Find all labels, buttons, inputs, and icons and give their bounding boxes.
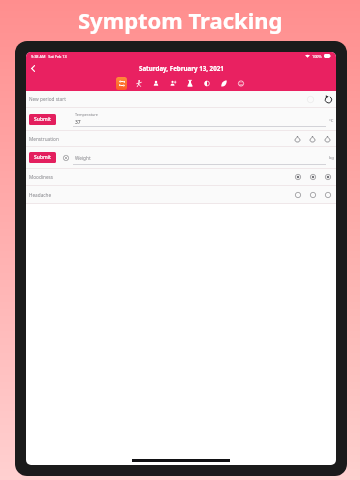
- staticText: Symptom Tracking: [78, 5, 283, 35]
- staticText: New period start: [29, 96, 66, 102]
- button[interactable]: Submit: [29, 152, 56, 163]
- button[interactable]: Submit: [29, 114, 56, 125]
- staticText: Submit: [34, 116, 51, 123]
- staticText: Moodiness: [29, 174, 54, 180]
- button[interactable]: Reset: [321, 92, 335, 106]
- staticText: kg: [329, 155, 334, 161]
- button[interactable]: Headache: [26, 186, 336, 203]
- button[interactable]: Mood level 3: [320, 169, 335, 185]
- button[interactable]: Mood level 1: [290, 169, 305, 185]
- staticText: Saturday, February 13, 2021: [139, 64, 224, 72]
- button[interactable]: Flow level 2: [305, 131, 320, 146]
- staticText: Temperature: [75, 112, 98, 117]
- button[interactable]: Add person: [167, 77, 178, 90]
- button[interactable]: Submit: [26, 108, 336, 130]
- staticText: 100%: [312, 54, 322, 59]
- button[interactable]: Headache level 3: [320, 187, 335, 203]
- button[interactable]: Activity: [133, 77, 144, 90]
- button[interactable]: Flow level 3: [320, 131, 335, 146]
- button[interactable]: Cycle: [116, 77, 127, 90]
- button[interactable]: Back: [27, 62, 39, 74]
- button[interactable]: Mood: [201, 77, 212, 90]
- button[interactable]: Wellbeing: [235, 77, 246, 90]
- staticText: °C: [329, 118, 334, 124]
- button[interactable]: Profile: [150, 77, 161, 90]
- staticText: Headache: [29, 192, 52, 198]
- staticText: 37: [75, 119, 81, 126]
- button[interactable]: Add entry: [303, 92, 317, 106]
- button[interactable]: Submit: [26, 147, 336, 168]
- staticText: Menstruation: [29, 136, 59, 142]
- button[interactable]: New period start: [26, 91, 336, 107]
- button[interactable]: Headache level 2: [305, 187, 320, 203]
- button[interactable]: Mood level 2: [305, 169, 320, 185]
- button[interactable]: Headache level 1: [290, 187, 305, 203]
- button[interactable]: Nutrition: [218, 77, 229, 90]
- staticText: Submit: [34, 154, 51, 161]
- button[interactable]: Medication: [184, 77, 195, 90]
- staticText: 9:38 AM Sat Feb 13: [31, 54, 67, 59]
- staticText: Weight: [75, 155, 91, 161]
- button[interactable]: Moodiness: [26, 169, 336, 185]
- button[interactable]: Flow level 1: [290, 131, 305, 146]
- button[interactable]: Menstruation: [26, 131, 336, 146]
